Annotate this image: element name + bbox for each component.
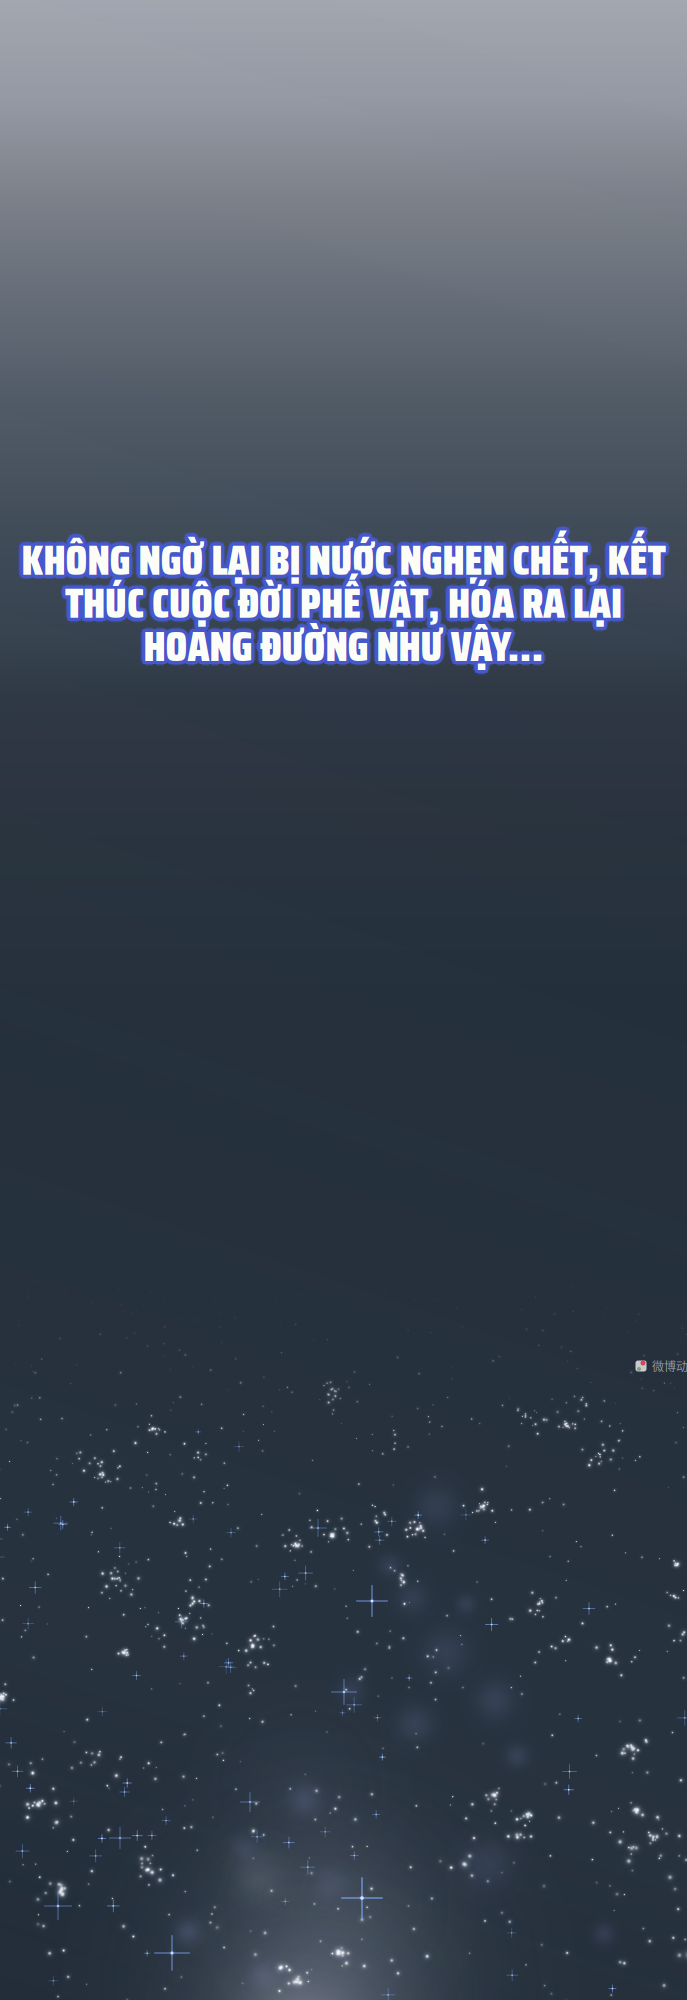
staticText: HOANG ĐƯỜNG NHƯ VẬY... [141,614,541,681]
staticText: THÚC CUỘC ĐỜI PHẾ VẬT, HÓA RA LẠI [62,568,619,635]
staticText: HOANG ĐƯỜNG NHƯ VẬY... [140,613,540,680]
staticText: THÚC CUỘC ĐỜI PHẾ VẬT, HÓA RA LẠI [63,566,620,634]
staticText: HOANG ĐƯỜNG NHƯ VẬY... [146,614,546,681]
staticText: HOANG ĐƯỜNG NHƯ VẬY... [141,610,541,677]
staticText: THÚC CUỘC ĐỜI PHẾ VẬT, HÓA RA LẠI [62,569,619,637]
staticText: THÚC CUỘC ĐỜI PHẾ VẬT, HÓA RA LẠI [63,572,620,639]
staticText: KHÔNG NGỜ LẠI BỊ NƯỚC NGHẸN CHẾT, KẾT [21,522,665,589]
staticText: THÚC CUỘC ĐỜI PHẾ VẬT, HÓA RA LẠI [65,573,622,640]
staticText: KHÔNG NGỜ LẠI BỊ NƯỚC NGHẸN CHẾT, KẾT [24,524,668,591]
staticText: THÚC CUỘC ĐỜI PHẾ VẬT, HÓA RA LẠI [67,572,624,639]
staticText: KHÔNG NGỜ LẠI BỊ NƯỚC NGHẸN CHẾT, KẾT [20,529,664,596]
staticText: KHÔNG NGỜ LẠI BỊ NƯỚC NGHẸN CHẾT, KẾT [20,523,664,591]
staticText: KHÔNG NGỜ LẠI BỊ NƯỚC NGHẸN CHẾT, KẾT [18,526,662,593]
staticText: KHÔNG NGỜ LẠI BỊ NƯỚC NGHẸN CHẾT, KẾT [24,525,668,592]
staticText: KHÔNG NGỜ LẠI BỊ NƯỚC NGHẸN CHẾT, KẾT [24,528,668,595]
staticText: THÚC CUỘC ĐỜI PHẾ VẬT, HÓA RA LẠI [65,569,622,637]
staticText: HOANG ĐƯỜNG NHƯ VẬY... [142,610,542,677]
staticText: THÚC CUỘC ĐỜI PHẾ VẬT, HÓA RA LẠI [69,569,626,637]
staticText: KHÔNG NGỜ LẠI BỊ NƯỚC NGHẸN CHẾT, KẾT [19,529,663,596]
staticText: HOANG ĐƯỜNG NHƯ VẬY... [145,615,545,683]
staticText: HOANG ĐƯỜNG NHƯ VẬY... [146,615,546,682]
staticText: KHÔNG NGỜ LẠI BỊ NƯỚC NGHẸN CHẾT, KẾT [25,529,669,597]
staticText: HOANG ĐƯỜNG NHƯ VẬY... [140,616,540,683]
staticText: KHÔNG NGỜ LẠI BỊ NƯỚC NGHẸN CHẾT, KẾT [19,524,663,591]
staticText: THÚC CUỘC ĐỜI PHẾ VẬT, HÓA RA LẠI [67,567,624,634]
staticText: KHÔNG NGỜ LẠI BỊ NƯỚC NGHẸN CHẾT, KẾT [21,531,665,598]
staticText: HOANG ĐƯỜNG NHƯ VẬY... [143,617,543,684]
staticText: THÚC CUỘC ĐỜI PHẾ VẬT, HÓA RA LẠI [67,572,624,639]
staticText: THÚC CUỘC ĐỜI PHẾ VẬT, HÓA RA LẠI [65,574,622,641]
staticText: THÚC CUỘC ĐỜI PHẾ VẬT, HÓA RA LẠI [68,569,625,637]
staticText: HOANG ĐƯỜNG NHƯ VẬY... [147,616,547,683]
staticText: THÚC CUỘC ĐỜI PHẾ VẬT, HÓA RA LẠI [62,572,619,640]
staticText: KHÔNG NGỜ LẠI BỊ NƯỚC NGHẸN CHẾT, KẾT [26,526,670,593]
staticText: HOANG ĐƯỜNG NHƯ VẬY... [141,615,541,682]
staticText: KHÔNG NGỜ LẠI BỊ NƯỚC NGHẸN CHẾT, KẾT [19,528,663,595]
staticText: KHÔNG NGỜ LẠI BỊ NƯỚC NGHẸN CHẾT, KẾT [23,523,667,591]
staticText: THÚC CUỘC ĐỜI PHẾ VẬT, HÓA RA LẠI [67,566,624,634]
staticText: KHÔNG NGỜ LẠI BỊ NƯỚC NGHẸN CHẾT, KẾT [17,526,661,593]
staticText: HOANG ĐƯỜNG NHƯ VẬY... [139,613,539,680]
staticText: KHÔNG NGỜ LẠI BỊ NƯỚC NGHẸN CHẾT, KẾT [18,529,662,597]
staticText: HOANG ĐƯỜNG NHƯ VẬY... [147,613,547,680]
staticText: THÚC CUỘC ĐỜI PHẾ VẬT, HÓA RA LẠI [68,568,625,635]
staticText: THÚC CUỘC ĐỜI PHẾ VẬT, HÓA RA LẠI [62,566,619,633]
staticText: HOANG ĐƯỜNG NHƯ VẬY... [143,609,543,677]
staticText: 微博动漫 [652,1357,687,1375]
staticText: KHÔNG NGỜ LẠI BỊ NƯỚC NGHẸN CHẾT, KẾT [25,523,669,590]
staticText: HOANG ĐƯỜNG NHƯ VẬY... [147,609,547,677]
staticText: THÚC CUỘC ĐỜI PHẾ VẬT, HÓA RA LẠI [63,567,620,634]
staticText: HOANG ĐƯỜNG NHƯ VẬY... [142,615,542,683]
staticText: THÚC CUỘC ĐỜI PHẾ VẬT, HÓA RA LẠI [68,572,625,640]
staticText: HOANG ĐƯỜNG NHƯ VẬY... [146,611,546,678]
staticText: HOANG ĐƯỜNG NHƯ VẬY... [143,608,543,675]
staticText: HOANG ĐƯỜNG NHƯ VẬY... [143,613,543,680]
staticText: THÚC CUỘC ĐỜI PHẾ VẬT, HÓA RA LẠI [61,569,618,637]
staticText: KHÔNG NGỜ LẠI BỊ NƯỚC NGHẸN CHẾT, KẾT [18,523,662,590]
staticText: HOANG ĐƯỜNG NHƯ VẬY... [143,616,543,683]
staticText: HOANG ĐƯỜNG NHƯ VẬY... [141,611,541,678]
staticText: KHÔNG NGỜ LẠI BỊ NƯỚC NGHẸN CHẾT, KẾT [21,523,665,590]
staticText: KHÔNG NGỜ LẠI BỊ NƯỚC NGHẸN CHẾT, KẾT [21,529,665,597]
staticText: THÚC CUỘC ĐỜI PHẾ VẬT, HÓA RA LẠI [62,571,619,638]
staticText: THÚC CUỘC ĐỜI PHẾ VẬT, HÓA RA LẠI [68,571,625,638]
staticText: HOANG ĐƯỜNG NHƯ VẬY... [148,613,548,680]
staticText: KHÔNG NGỜ LẠI BỊ NƯỚC NGHẸN CHẾT, KẾT [25,526,669,593]
staticText: HOANG ĐƯỜNG NHƯ VẬY... [145,610,545,677]
staticText: THÚC CUỘC ĐỜI PHẾ VẬT, HÓA RA LẠI [65,565,622,632]
staticText: KHÔNG NGỜ LẠI BỊ NƯỚC NGHẸN CHẾT, KẾT [24,529,668,596]
staticText: KHÔNG NGỜ LẠI BỊ NƯỚC NGHẸN CHẾT, KẾT [19,525,663,592]
staticText: KHÔNG NGỜ LẠI BỊ NƯỚC NGHẸN CHẾT, KẾT [23,529,667,596]
staticText: HOANG ĐƯỜNG NHƯ VẬY... [140,609,540,677]
staticText: KHÔNG NGỜ LẠI BỊ NƯỚC NGHẸN CHẾT, KẾT [21,526,665,593]
staticText: THÚC CUỘC ĐỜI PHẾ VẬT, HÓA RA LẠI [65,566,622,633]
staticText: THÚC CUỘC ĐỜI PHẾ VẬT, HÓA RA LẠI [68,566,625,633]
staticText: THÚC CUỘC ĐỜI PHẾ VẬT, HÓA RA LẠI [63,572,620,639]
staticText: HOANG ĐƯỜNG NHƯ VẬY... [146,610,546,677]
